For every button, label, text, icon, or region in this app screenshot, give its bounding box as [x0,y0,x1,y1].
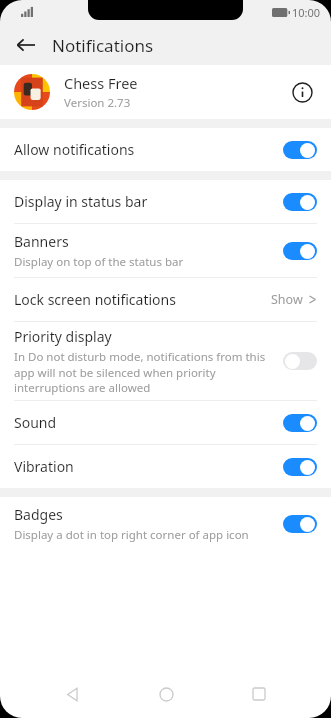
button[interactable]: On [283,515,317,533]
button[interactable]: Badges [0,497,331,550]
staticText: Sound [14,413,57,432]
button[interactable]: Lock screen notifications [0,278,331,321]
staticText: Display a dot in top right corner of app… [14,527,249,543]
staticText: Display in status bar [14,192,148,211]
button[interactable]: App info [287,77,317,107]
staticText: Banners [14,232,69,251]
button[interactable]: Sound [0,401,331,444]
staticText: Badges [14,505,63,524]
staticText: Show [271,291,303,308]
button[interactable]: Allow notifications [0,128,331,171]
staticText: Chess Free [64,73,138,93]
button[interactable]: Banners [0,224,331,277]
staticText: Version 2.73 [64,95,131,111]
staticText: Vibration [14,457,74,476]
button[interactable]: Vibration [0,445,331,488]
button[interactable]: On [283,458,317,476]
button[interactable]: Home [144,672,188,716]
staticText: In Do not disturb mode, notifications fr… [14,349,273,395]
button[interactable]: Chess Free [0,65,331,119]
staticText: Display on top of the status bar [14,254,184,270]
button[interactable]: Off [283,352,317,370]
button[interactable]: On [283,242,317,260]
staticText: 10:00 [292,5,321,20]
button[interactable]: Back [10,29,42,61]
button[interactable]: Recent apps [237,672,281,716]
button[interactable]: Priority display [0,322,331,400]
button[interactable]: On [283,414,317,432]
button[interactable]: On [283,141,317,159]
button[interactable]: Back [50,672,94,716]
button[interactable]: Display in status bar [0,180,331,223]
staticText: Notifications [52,34,154,57]
staticText: Lock screen notifications [14,290,176,309]
staticText: Priority display [14,327,112,346]
staticText: Allow notifications [14,140,135,159]
button[interactable]: On [283,193,317,211]
